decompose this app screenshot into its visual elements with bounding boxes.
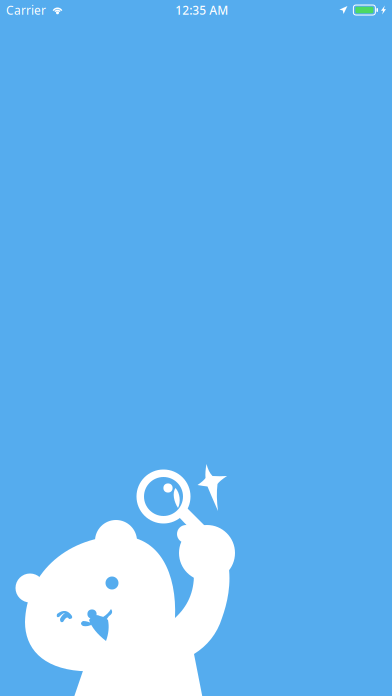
staticText: 12:35 AM: [175, 2, 228, 18]
staticText: Carrier: [6, 2, 46, 18]
